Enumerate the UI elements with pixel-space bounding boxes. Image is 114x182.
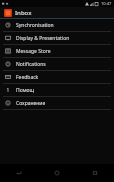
button[interactable]: Home [38,164,76,182]
staticText: Inbox [15,9,32,17]
staticText: Message Store [16,48,51,55]
button[interactable]: Notifications [0,58,114,70]
staticText: Synchronisation [16,22,54,29]
button[interactable]: Back [0,164,38,182]
button[interactable]: Display & Presentation [0,32,114,44]
staticText: Feedback [16,74,39,81]
staticText: Display & Presentation [16,35,70,42]
button[interactable]: Feedback [0,71,114,83]
button[interactable]: Synchronisation [0,19,114,31]
button[interactable]: Сохранение [0,97,114,109]
button[interactable]: Message Store [0,45,114,57]
staticText: 10:47 [101,1,112,6]
button[interactable]: Помощ [0,84,114,96]
button[interactable]: Recents [76,164,114,182]
staticText: Помощ [16,87,34,94]
button[interactable]: Inbox [0,7,114,18]
staticText: Notifications [16,61,46,68]
staticText: Сохранение [16,100,46,107]
